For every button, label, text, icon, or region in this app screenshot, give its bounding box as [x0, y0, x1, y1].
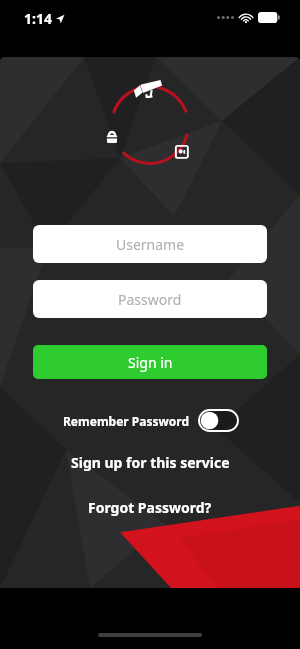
- button[interactable]: Sign up for this service: [65, 451, 236, 474]
- staticText: Sign in: [128, 353, 173, 372]
- staticText: Password: [118, 290, 182, 309]
- button[interactable]: Remember Password: [63, 410, 238, 431]
- button[interactable]: Forgot Password?: [82, 496, 218, 519]
- button[interactable]: Password: [33, 280, 267, 318]
- staticText: Username: [116, 235, 185, 254]
- other: Remember Password toggle: [199, 410, 238, 431]
- staticText: Sign up for this service: [71, 453, 230, 472]
- staticText: Forgot Password?: [88, 498, 212, 517]
- staticText: 1:14: [24, 9, 52, 28]
- button[interactable]: Sign in: [33, 345, 267, 379]
- staticText: Remember Password: [63, 413, 190, 429]
- button[interactable]: Username: [33, 225, 267, 263]
